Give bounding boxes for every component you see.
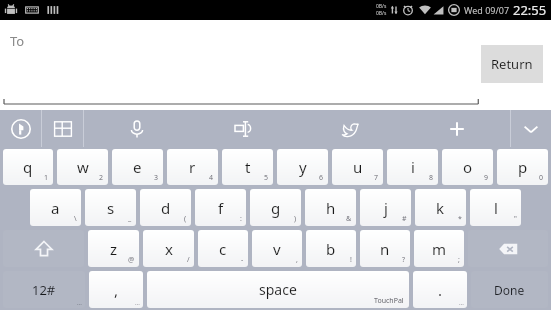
button[interactable]: g [250,189,301,226]
staticText: p [518,157,528,177]
button[interactable]: a [30,189,81,226]
button[interactable]: e [112,149,163,185]
button[interactable]: q [3,149,53,185]
staticText: o [463,157,473,177]
button[interactable]: k [415,189,466,226]
button[interactable]: , [89,271,143,308]
staticText: 2 [99,173,104,183]
staticText: v [273,239,281,259]
button[interactable]: w [57,149,108,185]
button[interactable]: Shift [3,230,84,267]
staticText: @ [128,255,135,265]
staticText: , [296,255,298,265]
staticText: i [411,157,415,177]
button[interactable]: r [167,149,218,185]
button[interactable]: space [147,271,409,308]
staticText: ? [402,255,406,265]
staticText: 3 [154,173,159,183]
staticText: ... [77,299,82,307]
button[interactable]: l [470,189,521,226]
staticText: r [189,157,196,177]
staticText: k [436,198,445,218]
button[interactable]: f [195,189,246,226]
staticText: 12# [32,281,56,299]
button[interactable]: v [252,230,302,267]
button[interactable]: x [143,230,194,267]
button[interactable]: More [403,110,510,147]
button[interactable]: Handwriting [0,110,41,147]
staticText: 6 [319,173,324,183]
staticText: l [494,198,498,218]
staticText: n [380,239,390,259]
staticText: Done [494,282,525,298]
staticText: To [10,32,25,50]
staticText: 9 [484,173,489,183]
staticText: 1 [44,173,49,183]
staticText: c [219,239,227,259]
button[interactable]: z [88,230,139,267]
button[interactable]: Return [481,45,543,83]
staticText: ( [184,214,187,224]
button[interactable]: n [360,230,410,267]
button[interactable]: j [360,189,411,226]
staticText: 7 [374,173,379,183]
button[interactable]: d [140,189,191,226]
staticText: y [299,157,307,177]
button[interactable]: Backspace [468,230,548,267]
staticText: ! [350,255,352,265]
staticText: e [133,157,142,177]
button[interactable]: o [442,149,493,185]
button[interactable]: Language EN [42,110,83,147]
staticText: w [77,157,89,177]
staticText: s [107,198,115,218]
staticText: h [326,198,336,218]
button[interactable]: 12# [3,271,85,308]
button[interactable]: s [85,189,136,226]
button[interactable]: Emoji / sticker [190,110,296,147]
button[interactable]: t [222,149,273,185]
button[interactable]: y [277,149,328,185]
staticText: ) [294,214,297,224]
staticText: 0B/s [376,3,387,10]
staticText: & [346,214,352,224]
button[interactable]: u [332,149,383,185]
staticText: Wed 09/07 [464,4,510,16]
staticText: j [384,198,388,218]
staticText: u [353,157,363,177]
button[interactable]: b [306,230,356,267]
button[interactable]: c [198,230,248,267]
staticText: " [514,214,517,224]
button[interactable]: Voice input [84,110,190,147]
staticText: - [241,255,244,265]
staticText: f [218,198,224,218]
staticText: d [161,198,171,218]
button[interactable]: i [387,149,438,185]
staticText: TouchPal [374,296,404,306]
button[interactable]: . [413,271,467,308]
button[interactable]: Hide keyboard [511,110,551,147]
staticText: m [432,239,447,259]
staticText: : [240,214,242,224]
button[interactable]: Twitter [296,110,403,147]
staticText: ... [459,299,464,307]
staticText: 5 [264,173,269,183]
button[interactable]: p [497,149,548,185]
staticText: ... [135,299,140,307]
staticText: b [326,239,336,259]
staticText: ; [458,255,460,265]
button[interactable]: Done [471,271,548,308]
staticText: g [271,198,281,218]
staticText: space [259,280,297,299]
button[interactable]: h [305,189,356,226]
staticText: , [114,280,119,300]
button[interactable]: m [414,230,464,267]
staticText: / [187,255,190,265]
staticText: a [51,198,60,218]
staticText: 8 [429,173,434,183]
staticText: t [245,157,251,177]
staticText: * [458,214,462,224]
button[interactable]: To [10,26,443,56]
staticText: \ [74,214,77,224]
staticText: 0 [539,173,544,183]
staticText: # [402,214,407,224]
